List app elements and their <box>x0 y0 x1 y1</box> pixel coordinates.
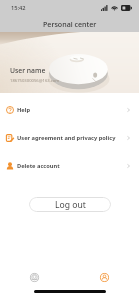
staticText: Personal center <box>43 19 97 29</box>
staticText: Delete account <box>17 162 60 170</box>
staticText: Log out <box>55 199 86 211</box>
staticText: 186750300056@163.com <box>10 78 60 84</box>
button[interactable]: Help <box>0 96 139 124</box>
button[interactable]: Log out <box>29 197 111 212</box>
button[interactable]: Device <box>0 266 69 289</box>
button[interactable]: Delete account <box>0 152 139 180</box>
button[interactable]: User agreement and privacy policy <box>0 124 139 152</box>
button[interactable]: Profile <box>69 266 139 289</box>
staticText: Help <box>17 106 31 114</box>
staticText: User name <box>10 66 46 75</box>
staticText: User agreement and privacy policy <box>17 134 116 142</box>
staticText: 15:42 <box>11 4 26 12</box>
